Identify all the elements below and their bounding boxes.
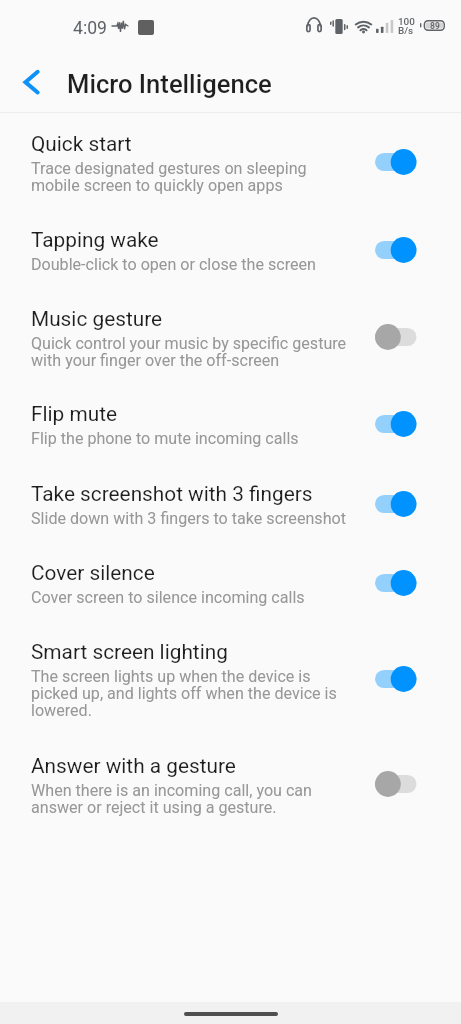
button[interactable]: Flip mute [0,383,461,463]
button[interactable]: Toggle [375,148,419,176]
button[interactable]: Smart screen lighting [0,621,461,735]
staticText: 100 [398,16,415,28]
button[interactable]: Answer with a gesture [0,735,461,831]
staticText: Trace designated gestures on sleeping mo… [31,159,348,194]
button[interactable]: Toggle [375,665,419,693]
button[interactable]: Toggle [375,569,419,597]
staticText: Smart screen lighting [31,640,228,664]
button[interactable]: Tapping wake [0,209,461,288]
staticText: Micro Intelligence [67,69,272,99]
staticText: 89 [430,21,440,31]
button[interactable]: Toggle [375,490,419,518]
button[interactable]: Toggle [375,236,419,264]
button[interactable]: Toggle [375,770,419,798]
staticText: Cover silence [31,561,155,585]
staticText: Take screenshot with 3 fingers [31,482,313,506]
staticText: The screen lights up when the device is … [31,667,348,719]
button[interactable]: Toggle [375,323,419,351]
button[interactable]: Cover silence [0,542,461,621]
staticText: Quick start [31,132,132,156]
staticText: Slide down with 3 fingers to take screen… [31,509,346,527]
button[interactable]: Toggle [375,410,419,438]
button[interactable]: Take screenshot with 3 fingers [0,463,461,542]
staticText: Tapping wake [31,228,159,252]
staticText: 4:09 [73,18,107,39]
button[interactable]: Quick start [0,113,461,209]
staticText: Music gesture [31,307,163,331]
staticText: Answer with a gesture [31,754,236,778]
staticText: When there is an incoming call, you can … [31,781,348,816]
staticText: Flip mute [31,402,117,426]
button[interactable]: Music gesture [0,288,461,383]
staticText: Flip the phone to mute incoming calls [31,429,299,447]
staticText: Cover screen to silence incoming calls [31,588,305,606]
staticText: Double-click to open or close the screen [31,255,316,273]
button[interactable]: Back [12,67,46,101]
staticText: B/s [398,25,414,37]
staticText: Quick control your music by specific ges… [31,334,348,369]
